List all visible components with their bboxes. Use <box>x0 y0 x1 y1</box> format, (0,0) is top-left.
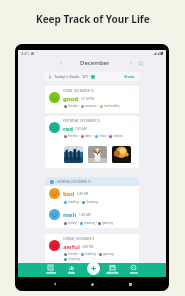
staticText: good <box>63 95 79 103</box>
button[interactable]: entries <box>40 263 61 277</box>
button[interactable]: Photo <box>64 146 83 163</box>
button[interactable]: TODAY, DECEMBER 13 <box>45 86 139 113</box>
staticText: more <box>130 271 138 275</box>
staticText: eat healthy <box>104 104 120 108</box>
staticText: Today's Goals <box>54 74 80 79</box>
staticText: reading <box>84 221 95 225</box>
staticText: 3:41 <box>21 51 29 56</box>
button[interactable]: Next month <box>125 58 135 68</box>
staticText: • <box>92 134 95 138</box>
staticText: awful <box>63 243 80 251</box>
button[interactable]: Photo <box>112 146 131 163</box>
staticText: MONDAY, DECEMBER 10 <box>57 180 92 184</box>
staticText: cleaning <box>86 200 98 204</box>
staticText: Keep Track of Your Life <box>36 12 150 26</box>
button[interactable]: Add entry <box>87 262 100 275</box>
staticText: • <box>95 221 98 225</box>
staticText: meh <box>63 211 77 219</box>
staticText: family <box>68 221 77 225</box>
staticText: YESTERDAY, DECEMBER 12 <box>63 119 101 123</box>
staticText: movies <box>113 134 123 138</box>
staticText: 7:00 AM <box>75 127 87 131</box>
staticText: • <box>96 252 99 256</box>
staticText: friends <box>68 252 78 256</box>
button[interactable]: stats <box>61 263 82 277</box>
button[interactable]: YESTERDAY, DECEMBER 12 <box>45 116 139 168</box>
staticText: bad <box>63 190 75 198</box>
staticText: reading <box>85 252 96 256</box>
button[interactable]: calendar <box>102 263 123 277</box>
button[interactable]: Search <box>135 58 146 69</box>
staticText: 1:45 AM <box>79 213 91 217</box>
staticText: date <box>85 134 92 138</box>
staticText: TODAY, DECEMBER 13 <box>63 89 94 93</box>
staticText: • <box>106 134 109 138</box>
staticText: SUNDAY, DECEMBER 9 <box>63 237 95 241</box>
button[interactable]: Previous month <box>56 58 66 68</box>
button[interactable]: Photo <box>88 146 107 163</box>
staticText: 5:40 PM <box>77 192 89 196</box>
staticText: friends <box>68 104 78 108</box>
staticText: friends <box>68 134 78 138</box>
staticText: stats <box>68 271 75 275</box>
staticText: 3:00 PM <box>82 245 94 249</box>
staticText: entries <box>46 271 56 275</box>
staticText: 1/1 <box>82 74 89 79</box>
staticText: 12:10 PM <box>81 97 94 101</box>
staticText: Show <box>124 74 135 79</box>
staticText: gaming <box>103 252 114 256</box>
staticText: • <box>78 104 81 108</box>
staticText: • <box>79 200 82 204</box>
staticText: rad <box>63 125 73 133</box>
staticText: • <box>78 134 81 138</box>
button[interactable]: meh <box>45 207 139 228</box>
staticText: cleaning <box>68 257 80 261</box>
staticText: exercise <box>85 104 97 108</box>
staticText: • <box>77 221 80 225</box>
button[interactable]: SUNDAY, DECEMBER 9 <box>45 234 139 266</box>
staticText: gaming <box>102 221 113 225</box>
staticText: • <box>97 104 100 108</box>
staticText: calendar <box>106 271 119 275</box>
staticText: • <box>78 252 81 256</box>
staticText: reading <box>68 200 79 204</box>
button[interactable]: Today's Goals <box>43 72 141 81</box>
button[interactable]: bad <box>45 186 139 207</box>
button[interactable]: more <box>123 263 144 277</box>
staticText: December <box>80 59 110 67</box>
staticText: relax <box>99 134 106 138</box>
